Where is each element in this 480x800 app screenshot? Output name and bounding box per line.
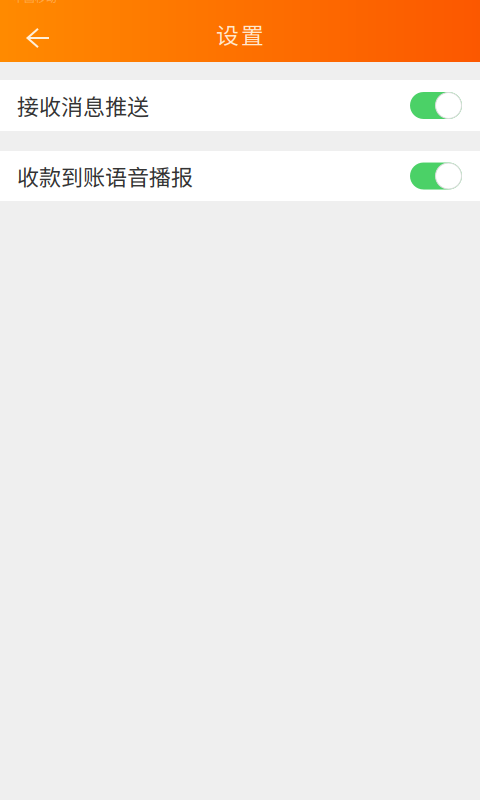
button[interactable]: Back — [15, 16, 61, 60]
button[interactable]: 接收消息推送 — [0, 80, 480, 131]
staticText: 收款到账语音播报 — [17, 160, 193, 192]
button[interactable]: 收款到账语音播报 — [0, 151, 480, 201]
staticText: 中国移动 — [13, 0, 57, 5]
staticText: 设置 — [216, 18, 264, 50]
staticText: 接收消息推送 — [17, 90, 149, 121]
